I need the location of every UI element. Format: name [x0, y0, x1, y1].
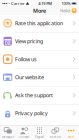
button[interactable]: Messages: [0, 125, 16, 140]
staticText: Follow us: [15, 56, 37, 63]
staticText: More: [33, 7, 46, 14]
staticText: Recents: [50, 135, 61, 139]
button[interactable]: Privacy policy: [0, 104, 79, 122]
button[interactable]: More: [63, 125, 79, 140]
staticText: Ask the support: [15, 92, 53, 99]
button[interactable]: View pricing: [0, 32, 79, 50]
button[interactable]: Recents: [47, 125, 63, 140]
staticText: Carrier: [11, 1, 25, 6]
staticText: Rate this application: [15, 20, 63, 27]
button[interactable]: Account: [60, 8, 79, 13]
staticText: Messages: [2, 135, 14, 139]
staticText: Our website: [15, 74, 44, 81]
staticText: Contacts: [18, 135, 29, 139]
staticText: Keypad: [35, 135, 44, 139]
button[interactable]: Keypad: [32, 125, 47, 140]
button[interactable]: Ask the support: [0, 86, 79, 104]
staticText: Hello!: [60, 8, 70, 13]
staticText: 4:19 PM: [38, 1, 52, 6]
staticText: More: [68, 135, 75, 139]
button[interactable]: Rate this application: [0, 14, 79, 32]
staticText: View pricing: [15, 38, 43, 45]
staticText: 100%: [61, 1, 70, 6]
button[interactable]: Our website: [0, 68, 79, 86]
staticText: Privacy policy: [15, 110, 48, 117]
button[interactable]: Contacts: [16, 125, 32, 140]
button[interactable]: Follow us: [0, 50, 79, 68]
